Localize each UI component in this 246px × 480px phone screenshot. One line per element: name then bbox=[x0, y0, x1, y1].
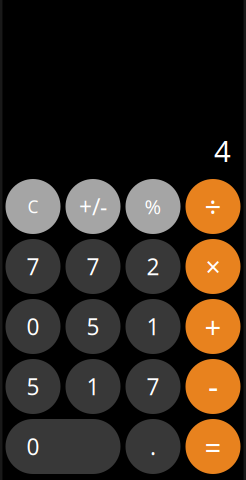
staticText: 7 bbox=[146, 371, 159, 401]
staticText: 1 bbox=[86, 371, 99, 401]
button[interactable]: Change sign bbox=[65, 179, 120, 234]
staticText: C bbox=[27, 195, 38, 218]
button[interactable]: 0 bbox=[5, 419, 120, 474]
staticText: ÷ bbox=[204, 187, 221, 226]
button[interactable]: 5 bbox=[5, 359, 60, 414]
button[interactable]: 0 bbox=[5, 299, 60, 354]
staticText: 5 bbox=[26, 371, 39, 401]
staticText: 0 bbox=[26, 311, 39, 341]
staticText: 5 bbox=[86, 311, 99, 341]
staticText: +/- bbox=[79, 191, 107, 221]
staticText: 0 bbox=[26, 431, 39, 461]
button[interactable]: 1 bbox=[125, 299, 180, 354]
button[interactable]: 7 bbox=[5, 239, 60, 294]
staticText: - bbox=[208, 365, 218, 408]
staticText: 1 bbox=[146, 311, 159, 341]
staticText: = bbox=[204, 427, 221, 466]
staticText: % bbox=[144, 193, 161, 220]
button[interactable]: Add bbox=[185, 299, 240, 354]
staticText: 7 bbox=[26, 251, 39, 281]
button[interactable]: Multiply bbox=[185, 239, 240, 294]
button[interactable]: 1 bbox=[65, 359, 120, 414]
staticText: × bbox=[205, 249, 220, 284]
button[interactable]: Divide bbox=[185, 179, 240, 234]
button[interactable]: Subtract bbox=[185, 359, 240, 414]
staticText: 4 bbox=[214, 131, 231, 170]
button[interactable]: 2 bbox=[125, 239, 180, 294]
button[interactable]: 7 bbox=[65, 239, 120, 294]
staticText: 2 bbox=[146, 251, 159, 281]
staticText: 7 bbox=[86, 251, 99, 281]
staticText: + bbox=[204, 307, 221, 346]
button[interactable]: Clear bbox=[5, 179, 60, 234]
staticText: . bbox=[150, 431, 156, 461]
button[interactable]: Percent bbox=[125, 179, 180, 234]
button[interactable]: 5 bbox=[65, 299, 120, 354]
button[interactable]: Equals bbox=[185, 419, 240, 474]
button[interactable]: Decimal point bbox=[125, 419, 180, 474]
button[interactable]: 7 bbox=[125, 359, 180, 414]
